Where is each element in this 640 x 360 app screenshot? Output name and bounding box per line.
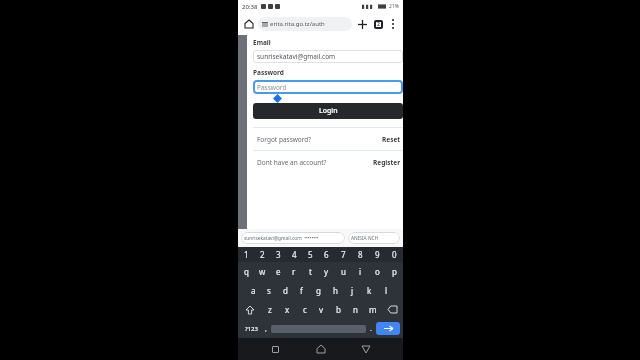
button[interactable]: x bbox=[279, 300, 296, 319]
staticText: b bbox=[336, 304, 341, 315]
button[interactable]: b bbox=[330, 300, 347, 319]
button[interactable]: ?123 bbox=[241, 319, 261, 338]
staticText: a bbox=[251, 285, 256, 296]
button[interactable]: d bbox=[277, 281, 293, 300]
staticText: sunrisekatavi@gmail.com bbox=[257, 52, 336, 61]
button[interactable]: s bbox=[261, 281, 277, 300]
staticText: v bbox=[319, 304, 324, 315]
staticText: u bbox=[341, 266, 346, 277]
button[interactable]: 5 bbox=[302, 247, 318, 262]
staticText: Password bbox=[257, 83, 287, 92]
staticText: Forgot password? bbox=[257, 135, 312, 144]
staticText: ANISIA NCH bbox=[351, 235, 379, 242]
button[interactable]: 0 bbox=[386, 247, 403, 262]
button[interactable]: g bbox=[310, 281, 327, 300]
button[interactable]: n bbox=[347, 300, 364, 319]
staticText: Email bbox=[253, 38, 271, 47]
button[interactable]: erita.rita.go.tz/auth bbox=[258, 17, 352, 31]
button[interactable]: Login bbox=[253, 103, 403, 119]
button[interactable]: Backspace bbox=[381, 300, 403, 319]
button[interactable]: l bbox=[378, 281, 395, 300]
staticText: 2 bbox=[260, 249, 265, 260]
staticText: 0 bbox=[392, 249, 397, 260]
button[interactable]: i bbox=[352, 262, 369, 281]
staticText: c bbox=[303, 304, 307, 315]
button[interactable]: . bbox=[366, 319, 376, 338]
button[interactable]: m bbox=[364, 300, 381, 319]
button[interactable]: y bbox=[318, 262, 335, 281]
button[interactable]: o bbox=[369, 262, 386, 281]
staticText: 9 bbox=[375, 249, 380, 260]
staticText: 5 bbox=[308, 249, 313, 260]
staticText: 6 bbox=[324, 249, 329, 260]
staticText: o bbox=[375, 266, 380, 277]
button[interactable]: q bbox=[238, 262, 254, 281]
staticText: s bbox=[267, 285, 271, 296]
staticText: 3 bbox=[276, 249, 281, 260]
staticText: q bbox=[244, 266, 249, 277]
staticText: Dont have an account? bbox=[257, 158, 327, 167]
staticText: 1 bbox=[244, 249, 249, 260]
button[interactable]: Forgot password? bbox=[253, 128, 403, 150]
staticText: r bbox=[292, 266, 296, 277]
button[interactable]: r bbox=[286, 262, 302, 281]
button[interactable]: More options bbox=[387, 18, 399, 30]
button[interactable]: 9 bbox=[369, 247, 386, 262]
staticText: 2 bbox=[377, 21, 380, 28]
staticText: t bbox=[309, 266, 312, 277]
button[interactable]: h bbox=[327, 281, 344, 300]
staticText: l bbox=[385, 285, 388, 296]
button[interactable]: c bbox=[296, 300, 313, 319]
staticText: , bbox=[265, 324, 267, 334]
staticText: . bbox=[370, 324, 372, 334]
button[interactable]: k bbox=[361, 281, 378, 300]
staticText: f bbox=[300, 285, 303, 296]
button[interactable]: Home bbox=[242, 17, 256, 31]
button[interactable]: t bbox=[302, 262, 318, 281]
button[interactable]: New tab bbox=[355, 17, 369, 31]
button[interactable]: Back bbox=[357, 340, 375, 358]
staticText: Password bbox=[253, 68, 284, 77]
button[interactable]: sunrisekatavi@gmail.com •••••••• bbox=[241, 232, 345, 244]
button[interactable]: sunrisekatavi@gmail.com bbox=[253, 50, 403, 63]
staticText: Login bbox=[319, 106, 338, 116]
button[interactable]: z bbox=[261, 300, 279, 319]
staticText: sunrisekatavi@gmail.com •••••••• bbox=[244, 235, 319, 242]
button[interactable]: 6 bbox=[318, 247, 335, 262]
staticText: 20:38 bbox=[242, 3, 258, 11]
button[interactable]: 4 bbox=[286, 247, 302, 262]
staticText: 21% bbox=[389, 3, 399, 10]
button[interactable]: Enter bbox=[376, 322, 400, 335]
button[interactable]: 2 bbox=[254, 247, 270, 262]
button[interactable]: 7 bbox=[335, 247, 352, 262]
button[interactable]: 8 bbox=[352, 247, 369, 262]
staticText: y bbox=[324, 266, 329, 277]
button[interactable]: Tabs bbox=[371, 17, 385, 31]
staticText: m bbox=[369, 304, 377, 315]
button[interactable]: p bbox=[386, 262, 403, 281]
button[interactable]: 3 bbox=[270, 247, 286, 262]
button[interactable]: a bbox=[245, 281, 261, 300]
button[interactable]: 1 bbox=[238, 247, 254, 262]
button[interactable]: j bbox=[344, 281, 361, 300]
button[interactable]: w bbox=[254, 262, 270, 281]
button[interactable]: Dont have an account? bbox=[253, 151, 403, 173]
staticText: Register bbox=[373, 158, 401, 167]
button[interactable]: Password bbox=[253, 80, 403, 94]
staticText: w bbox=[259, 266, 266, 277]
button[interactable]: , bbox=[261, 319, 271, 338]
button[interactable]: Shift bbox=[238, 300, 261, 319]
staticText: d bbox=[283, 285, 288, 296]
button[interactable]: Home bbox=[312, 340, 330, 358]
staticText: p bbox=[392, 266, 397, 277]
button[interactable]: f bbox=[293, 281, 310, 300]
staticText: z bbox=[268, 304, 272, 315]
button[interactable]: u bbox=[335, 262, 352, 281]
button[interactable]: Recent apps bbox=[266, 340, 284, 358]
button[interactable]: e bbox=[270, 262, 286, 281]
staticText: 4 bbox=[292, 249, 297, 260]
button[interactable]: v bbox=[313, 300, 330, 319]
staticText: Reset bbox=[382, 135, 401, 144]
button[interactable]: ANISIA NCH bbox=[348, 232, 400, 244]
